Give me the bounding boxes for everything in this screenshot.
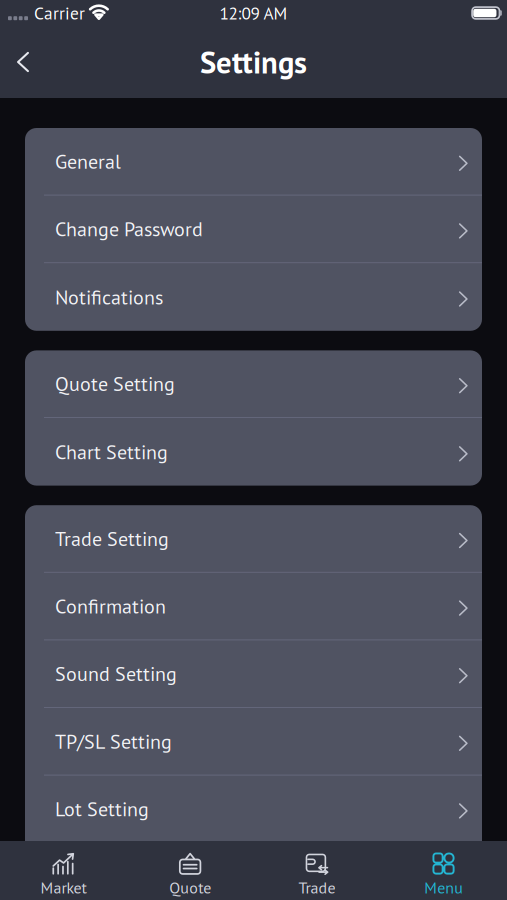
staticText: Confirmation: [55, 593, 166, 619]
staticText: Settings: [200, 42, 307, 82]
staticText: Trade: [298, 877, 335, 898]
button[interactable]: Sound Setting: [25, 640, 482, 708]
staticText: Quote Setting: [55, 371, 175, 397]
button[interactable]: Lot Setting: [25, 776, 482, 843]
staticText: Chart Setting: [55, 439, 168, 465]
button[interactable]: TP/SL Setting: [25, 708, 482, 776]
staticText: Sound Setting: [55, 661, 177, 687]
staticText: Notifications: [55, 284, 163, 310]
staticText: General: [55, 148, 121, 174]
staticText: Trade Setting: [55, 526, 169, 551]
staticText: TP/SL Setting: [55, 728, 172, 754]
staticText: Carrier: [34, 2, 85, 24]
staticText: Menu: [424, 877, 463, 898]
button[interactable]: Back: [0, 40, 46, 84]
staticText: 12:09 AM: [219, 2, 287, 24]
staticText: One Click Trading: [55, 864, 204, 890]
button[interactable]: Trade Setting: [25, 505, 482, 573]
button[interactable]: Chart Setting: [25, 418, 482, 486]
button[interactable]: General: [25, 128, 482, 196]
button[interactable]: Market: [0, 839, 127, 900]
button[interactable]: Quote Setting: [25, 350, 482, 418]
button[interactable]: Notifications: [25, 263, 482, 331]
staticText: Change Password: [55, 216, 203, 242]
button[interactable]: One Click Trading: [25, 843, 482, 900]
staticText: Market: [40, 877, 86, 898]
staticText: Lot Setting: [55, 796, 149, 822]
button[interactable]: Trade: [253, 839, 380, 900]
button[interactable]: Menu: [380, 839, 507, 900]
button[interactable]: Change Password: [25, 196, 482, 263]
staticText: Quote: [169, 877, 211, 898]
button[interactable]: Quote: [127, 839, 254, 900]
button[interactable]: Confirmation: [25, 573, 482, 640]
